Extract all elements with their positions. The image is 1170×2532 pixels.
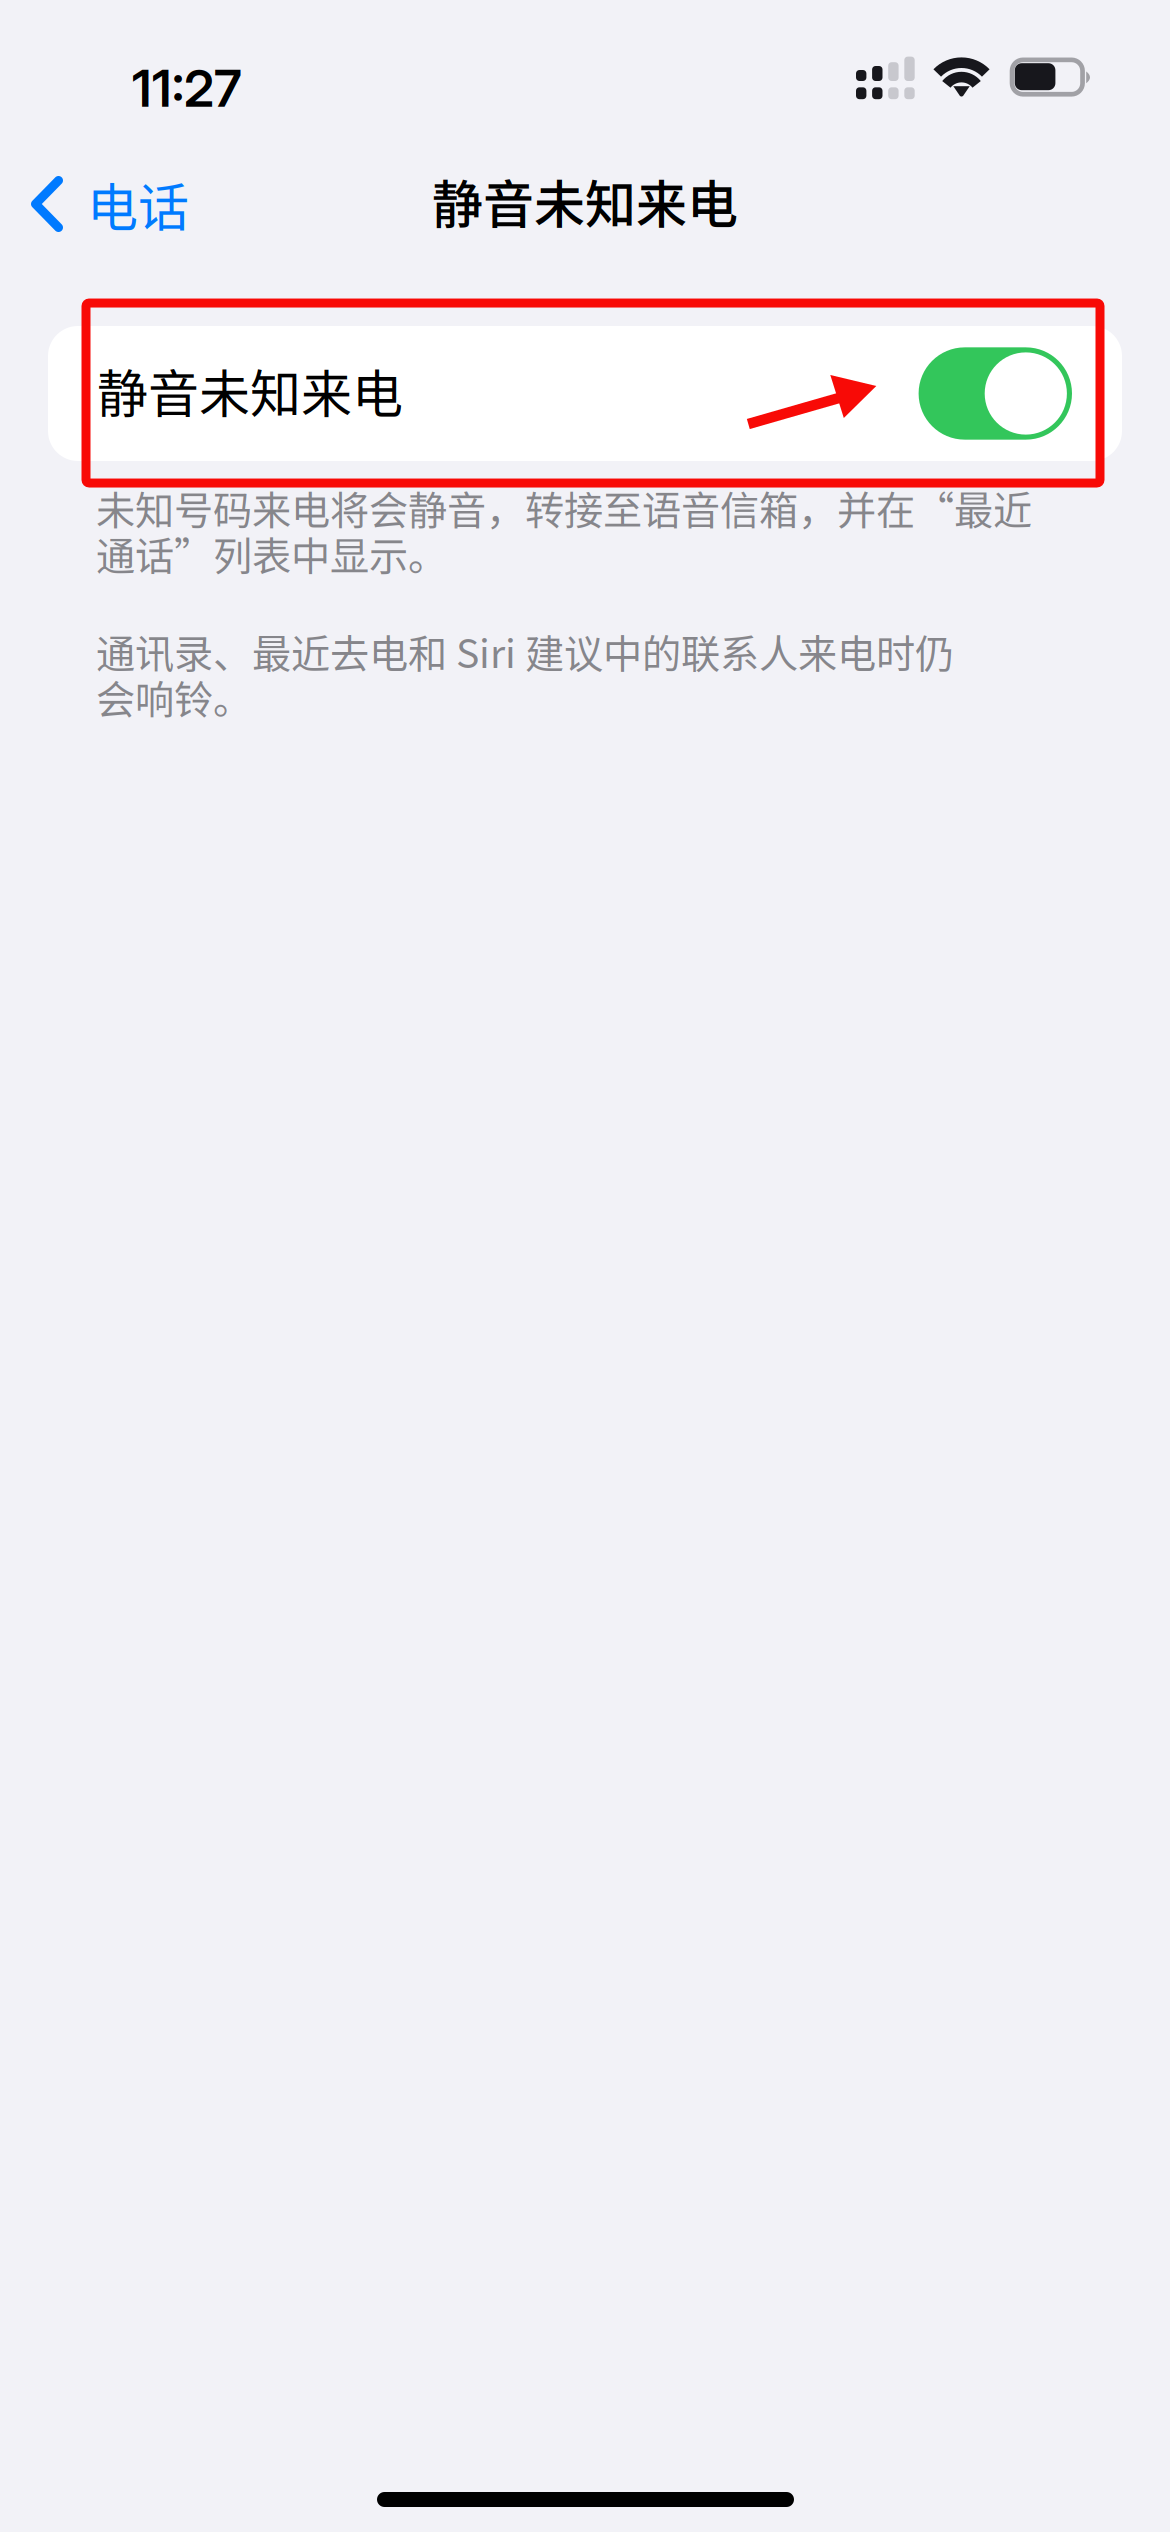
staticText: 静音未知来电	[432, 164, 738, 238]
staticText: 电话	[87, 167, 189, 241]
staticText: 未知号码来电将会静音，转接至语音信箱，并在“最近通话”列表中显示。	[96, 479, 1032, 581]
staticText: 静音未知来电	[97, 354, 403, 427]
staticText: 通讯录、最近去电和 Siri 建议中的联系人来电时仍 会响铃。	[96, 622, 954, 725]
button[interactable]: 静音未知来电	[48, 326, 1122, 461]
staticText: 11:27	[132, 57, 242, 119]
button[interactable]: 返回电话	[7, 155, 213, 253]
